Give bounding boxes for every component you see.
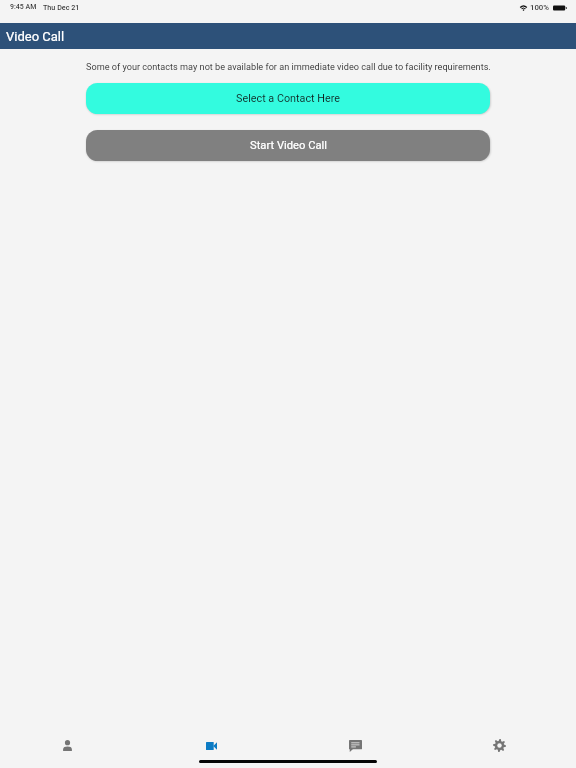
staticText: Video Call xyxy=(6,29,65,44)
button[interactable]: Start Video Call xyxy=(86,130,490,161)
staticText: 9:45 AM xyxy=(10,3,37,11)
staticText: Select a Contact Here xyxy=(236,92,341,105)
staticText: Thu Dec 21 xyxy=(43,3,80,11)
button[interactable]: Video Call xyxy=(139,737,283,754)
button[interactable]: Messages xyxy=(283,737,427,754)
staticText: 100% xyxy=(530,3,550,12)
staticText: Start Video Call xyxy=(250,139,327,152)
button[interactable]: Settings xyxy=(427,737,571,754)
button[interactable]: Select a Contact Here xyxy=(86,83,490,114)
button[interactable]: Contacts xyxy=(0,737,139,754)
staticText: Some of your contacts may not be availab… xyxy=(86,62,496,73)
